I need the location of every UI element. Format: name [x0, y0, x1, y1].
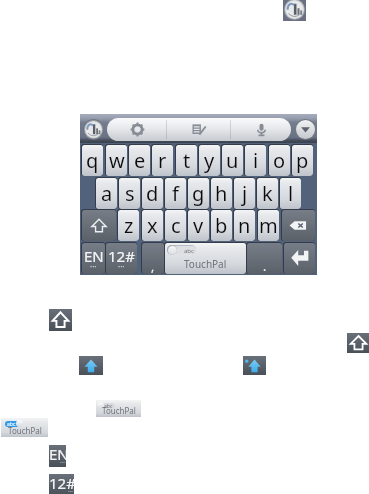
button[interactable]: d: [141, 177, 163, 209]
button[interactable]: Voice input: [254, 122, 269, 137]
button[interactable]: w: [105, 144, 127, 176]
button[interactable]: t: [175, 144, 197, 176]
button[interactable]: Settings: [130, 122, 145, 137]
button[interactable]: i: [244, 144, 266, 176]
button[interactable]: 12#: [105, 242, 137, 274]
staticText: j: [242, 180, 248, 207]
staticText: c: [171, 212, 181, 239]
button[interactable]: s: [118, 177, 140, 209]
button[interactable]: Shift: [347, 333, 369, 353]
staticText: ···: [90, 261, 97, 272]
button[interactable]: Space: [164, 242, 246, 274]
staticText: ,: [151, 258, 155, 274]
staticText: b: [215, 212, 228, 239]
button[interactable]: b: [210, 209, 232, 241]
button[interactable]: a: [95, 177, 117, 209]
staticText: l: [288, 180, 294, 207]
button[interactable]: .: [246, 242, 282, 274]
staticText: y: [204, 147, 215, 174]
button[interactable]: x: [141, 209, 163, 241]
button[interactable]: EN: [81, 242, 105, 274]
staticText: s: [125, 180, 135, 207]
staticText: k: [262, 180, 273, 207]
staticText: p: [296, 147, 309, 174]
button[interactable]: Shift: [49, 309, 72, 331]
button[interactable]: u: [221, 144, 243, 176]
staticText: w: [109, 147, 125, 174]
button[interactable]: Backspace: [281, 209, 315, 241]
button[interactable]: Edit: [191, 122, 206, 137]
button[interactable]: h: [210, 177, 232, 209]
staticText: r: [158, 147, 167, 174]
staticText: ···: [60, 458, 65, 466]
staticText: h: [215, 180, 228, 207]
button[interactable]: Enter: [283, 242, 315, 274]
staticText: u: [226, 147, 239, 174]
staticText: t: [183, 147, 191, 174]
button[interactable]: Shift on: [79, 356, 103, 375]
button[interactable]: r: [151, 144, 173, 176]
staticText: EN: [49, 444, 66, 464]
button[interactable]: l: [279, 177, 301, 209]
staticText: ···: [118, 261, 125, 272]
staticText: ···: [68, 487, 73, 494]
staticText: d: [146, 180, 159, 207]
staticText: v: [193, 212, 204, 239]
button[interactable]: p: [291, 144, 313, 176]
staticText: m: [259, 212, 278, 239]
staticText: z: [124, 212, 134, 239]
staticText: f: [172, 180, 179, 207]
button[interactable]: 12#: [49, 474, 74, 494]
button[interactable]: m: [257, 209, 279, 241]
staticText: abc: [104, 403, 113, 409]
button[interactable]: k: [256, 177, 278, 209]
staticText: n: [238, 212, 251, 239]
button[interactable]: g: [187, 177, 209, 209]
button[interactable]: Caps lock: [243, 356, 266, 375]
button[interactable]: TouchPal menu: [83, 119, 104, 140]
button[interactable]: f: [164, 177, 186, 209]
staticText: abc: [7, 421, 16, 427]
button[interactable]: EN: [49, 445, 66, 467]
staticText: abc: [184, 247, 194, 254]
staticText: o: [273, 147, 286, 174]
button[interactable]: j: [233, 177, 255, 209]
staticText: i: [253, 147, 259, 174]
staticText: a: [101, 180, 113, 207]
button[interactable]: Space bar: [1, 418, 48, 437]
staticText: q: [86, 147, 99, 174]
button[interactable]: Collapse keyboard: [295, 119, 316, 140]
button[interactable]: c: [164, 209, 186, 241]
button[interactable]: y: [198, 144, 220, 176]
button[interactable]: q: [81, 144, 103, 176]
button[interactable]: Space bar: [96, 400, 141, 417]
button[interactable]: ,: [141, 242, 164, 274]
staticText: g: [192, 180, 205, 207]
staticText: 12#: [49, 473, 74, 493]
staticText: x: [147, 212, 158, 239]
button[interactable]: e: [128, 144, 150, 176]
staticText: EN: [84, 246, 104, 266]
button[interactable]: Shift: [81, 209, 116, 241]
staticText: TouchPal: [102, 405, 136, 416]
staticText: 12#: [108, 246, 135, 266]
staticText: .: [263, 258, 267, 274]
button[interactable]: o: [268, 144, 290, 176]
staticText: e: [134, 147, 146, 174]
staticText: TouchPal: [8, 425, 42, 436]
button[interactable]: v: [187, 209, 209, 241]
staticText: TouchPal: [184, 257, 227, 271]
button[interactable]: n: [233, 209, 255, 241]
button[interactable]: TouchPal logo: [283, 0, 306, 21]
button[interactable]: z: [117, 209, 139, 241]
